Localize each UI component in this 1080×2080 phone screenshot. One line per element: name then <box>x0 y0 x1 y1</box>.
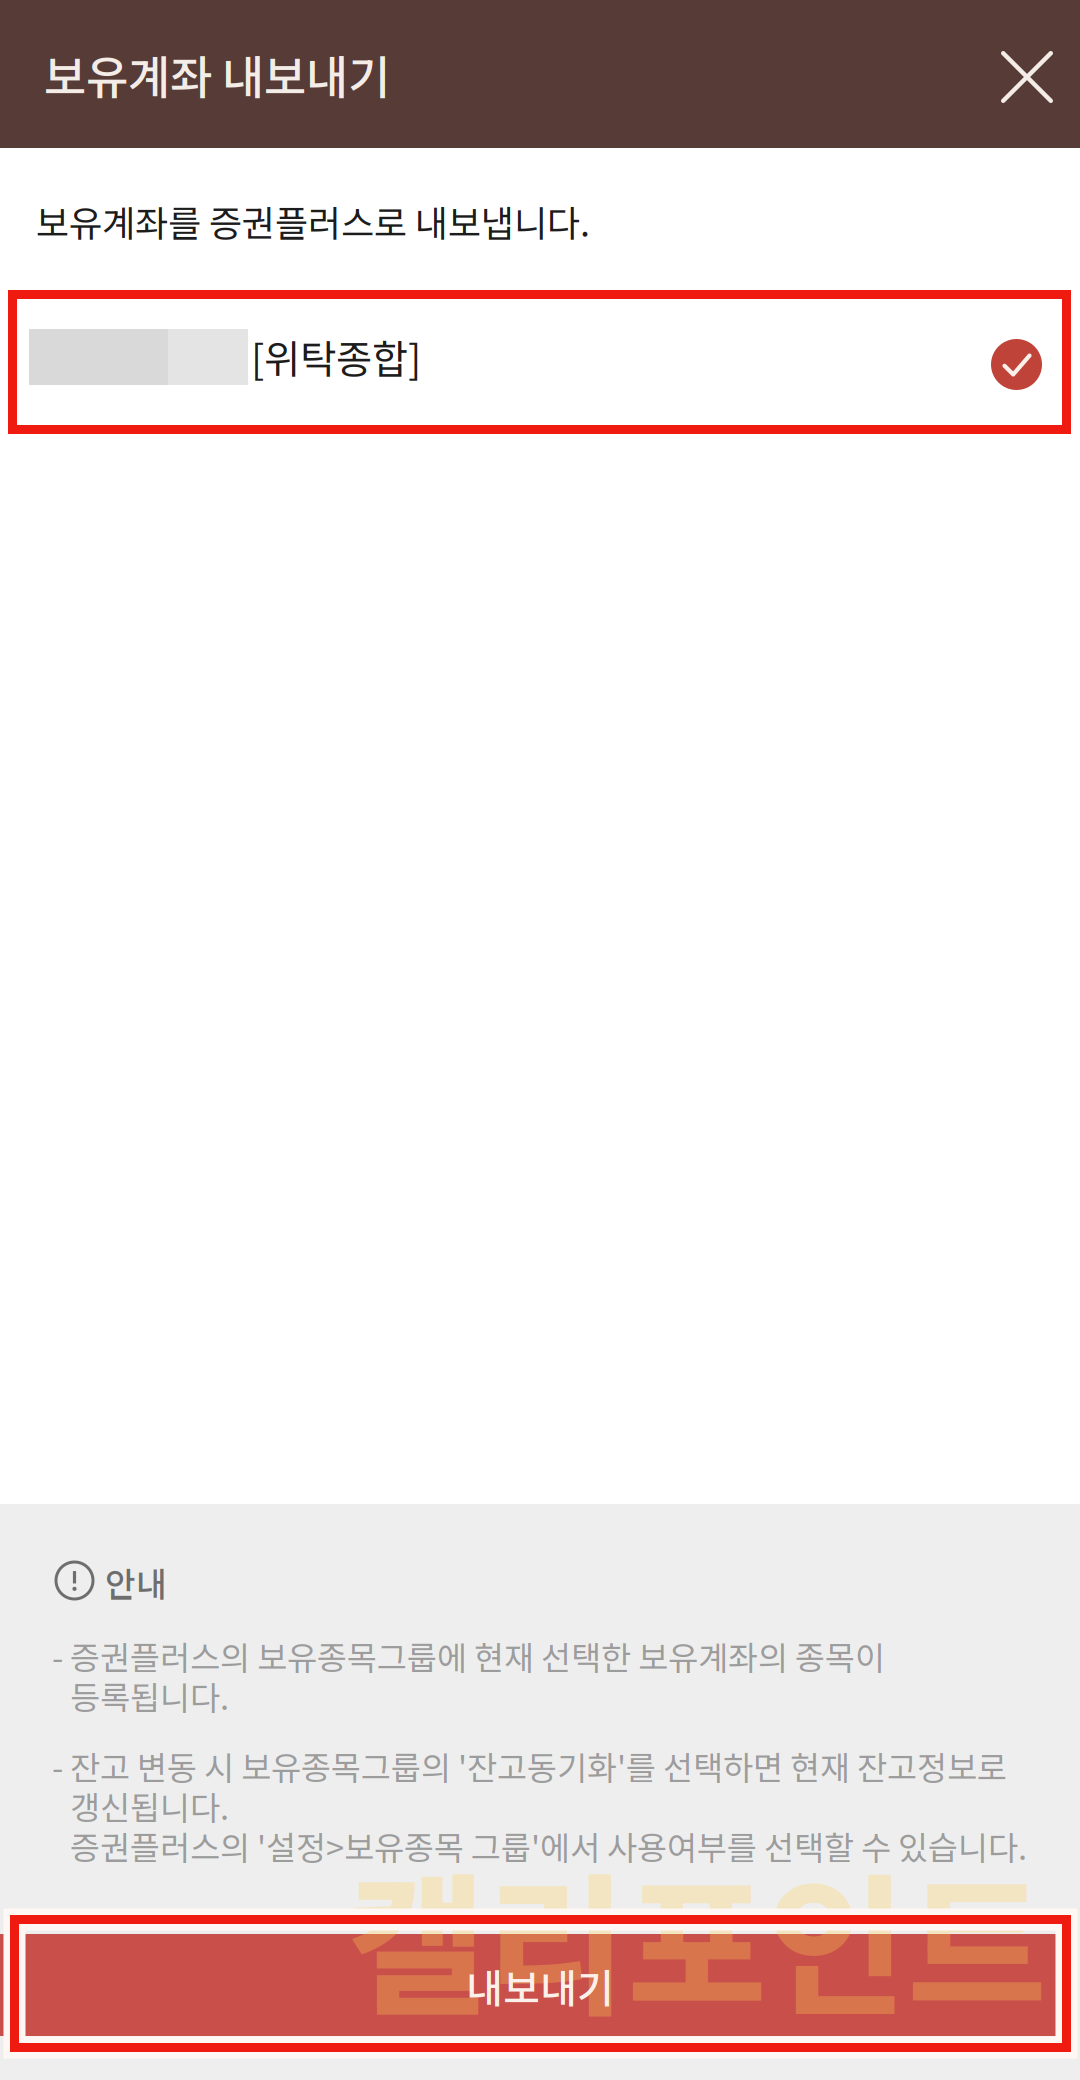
staticText: 내보내기 <box>466 1957 614 2015</box>
staticText: 보유계좌 내보내기 <box>44 41 390 108</box>
staticText: 캘리포인트 <box>347 1826 1047 2046</box>
button[interactable]: [위탁종합] <box>13 295 1067 431</box>
staticText: - <box>52 1632 63 1679</box>
staticText: 잔고 변동 시 보유종목그룹의 '잔고동기화'를 선택하면 현재 잔고정보로 <box>70 1742 1007 1789</box>
staticText: 증권플러스의 보유종목그룹에 현재 선택한 보유계좌의 종목이 <box>70 1632 885 1679</box>
staticText: 안내 <box>105 1558 167 1606</box>
staticText: 증권플러스의 '설정>보유종목 그룹'에서 사용여부를 선택할 수 있습니다. <box>70 1822 1027 1869</box>
button[interactable]: 내보내기 <box>0 1934 1058 2036</box>
staticText: 갱신됩니다. <box>70 1782 229 1829</box>
staticText: 등록됩니다. <box>70 1672 229 1719</box>
button[interactable]: Close <box>967 17 1080 137</box>
staticText: - <box>52 1742 63 1789</box>
staticText: [위탁종합] <box>251 328 421 385</box>
staticText: 보유계좌를 증권플러스로 내보냅니다. <box>36 195 590 247</box>
